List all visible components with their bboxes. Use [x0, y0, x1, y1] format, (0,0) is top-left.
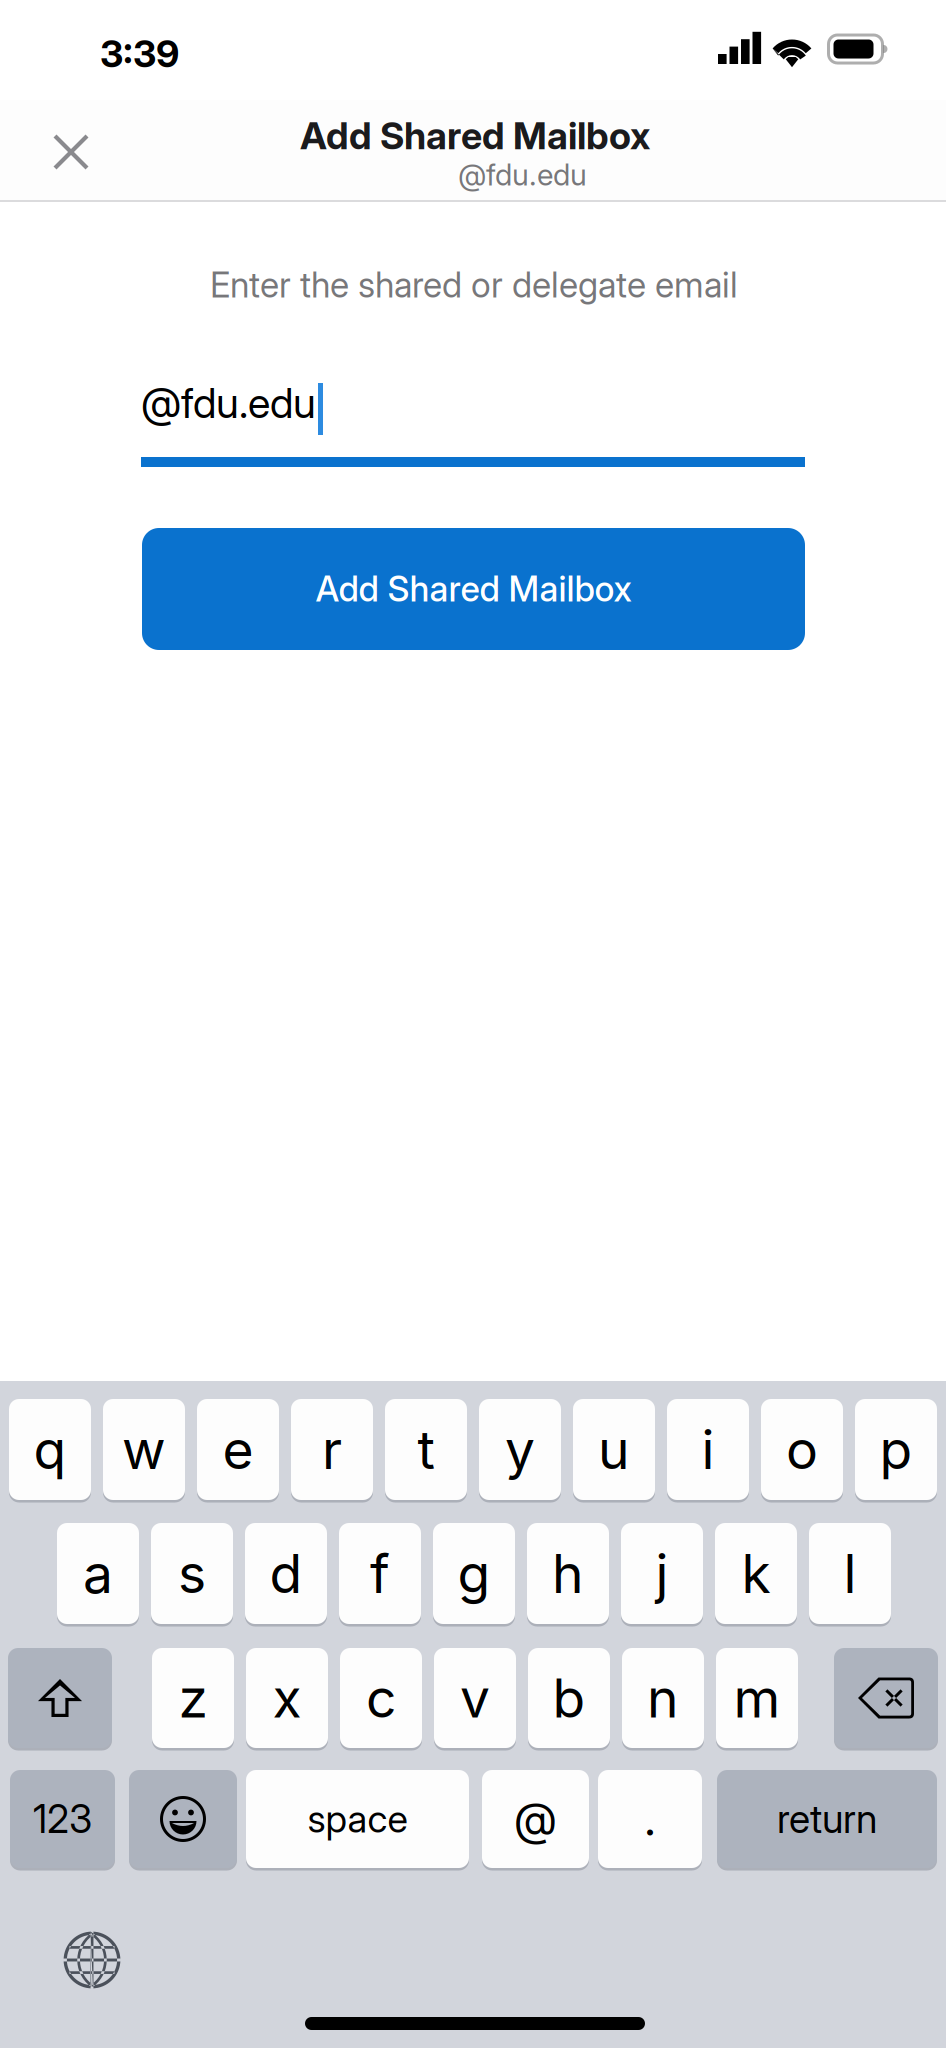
- button[interactable]: i: [667, 1399, 749, 1503]
- staticText: d: [269, 1541, 302, 1606]
- button[interactable]: 123: [10, 1770, 115, 1871]
- button[interactable]: r: [291, 1399, 373, 1503]
- staticText: t: [417, 1417, 434, 1482]
- staticText: Add Shared Mailbox: [300, 113, 650, 158]
- button[interactable]: a: [57, 1523, 139, 1627]
- button[interactable]: y: [479, 1399, 561, 1503]
- staticText: space: [307, 1796, 407, 1842]
- staticText: a: [83, 1541, 113, 1606]
- button[interactable]: p: [855, 1399, 937, 1503]
- button[interactable]: w: [103, 1399, 185, 1503]
- button[interactable]: v: [434, 1648, 516, 1751]
- staticText: v: [460, 1666, 490, 1730]
- staticText: r: [322, 1417, 342, 1482]
- staticText: @: [513, 1792, 557, 1846]
- button[interactable]: g: [433, 1523, 515, 1627]
- button[interactable]: f: [339, 1523, 421, 1627]
- staticText: .: [643, 1792, 656, 1846]
- staticText: u: [598, 1417, 630, 1482]
- button[interactable]: .: [598, 1770, 702, 1871]
- button[interactable]: q: [9, 1399, 91, 1503]
- staticText: q: [33, 1417, 66, 1482]
- button[interactable]: u: [573, 1399, 655, 1503]
- staticText: o: [786, 1417, 818, 1482]
- staticText: c: [366, 1666, 396, 1730]
- button[interactable]: Add Shared Mailbox: [142, 528, 805, 650]
- button[interactable]: @: [482, 1770, 589, 1871]
- button[interactable]: Next keyboard: [46, 1914, 138, 2006]
- button[interactable]: l: [809, 1523, 891, 1627]
- button[interactable]: e: [197, 1399, 279, 1503]
- button[interactable]: space: [246, 1770, 469, 1871]
- button[interactable]: k: [715, 1523, 797, 1627]
- staticText: h: [552, 1541, 584, 1606]
- staticText: j: [655, 1541, 668, 1606]
- button[interactable]: Shift: [8, 1648, 112, 1751]
- staticText: f: [370, 1541, 390, 1606]
- staticText: @fdu.edu: [458, 157, 587, 192]
- button[interactable]: c: [340, 1648, 422, 1751]
- button[interactable]: z: [152, 1648, 234, 1751]
- staticText: Enter the shared or delegate email: [210, 264, 738, 306]
- staticText: 123: [33, 1796, 92, 1842]
- button[interactable]: j: [621, 1523, 703, 1627]
- staticText: y: [505, 1417, 535, 1482]
- staticText: b: [552, 1666, 585, 1730]
- staticText: w: [122, 1417, 166, 1482]
- button[interactable]: Close: [25, 106, 117, 198]
- button[interactable]: Emoji: [129, 1770, 237, 1871]
- staticText: s: [178, 1541, 206, 1606]
- button[interactable]: Delete: [834, 1648, 938, 1751]
- staticText: return: [777, 1796, 877, 1842]
- staticText: e: [222, 1417, 253, 1482]
- button[interactable]: b: [528, 1648, 610, 1751]
- button[interactable]: h: [527, 1523, 609, 1627]
- staticText: p: [879, 1417, 912, 1482]
- button[interactable]: d: [245, 1523, 327, 1627]
- staticText: k: [741, 1541, 770, 1606]
- staticText: i: [701, 1417, 714, 1482]
- staticText: Add Shared Mailbox: [315, 568, 631, 610]
- button[interactable]: s: [151, 1523, 233, 1627]
- button[interactable]: t: [385, 1399, 467, 1503]
- staticText: z: [178, 1666, 207, 1730]
- staticText: @fdu.edu: [141, 378, 316, 428]
- button[interactable]: m: [716, 1648, 798, 1751]
- button[interactable]: return: [717, 1770, 937, 1871]
- staticText: x: [272, 1666, 301, 1730]
- staticText: 3:39: [100, 31, 179, 76]
- staticText: n: [647, 1666, 679, 1730]
- staticText: l: [843, 1541, 856, 1606]
- button[interactable]: n: [622, 1648, 704, 1751]
- button[interactable]: o: [761, 1399, 843, 1503]
- button[interactable]: x: [246, 1648, 328, 1751]
- staticText: m: [733, 1666, 780, 1730]
- staticText: g: [457, 1541, 490, 1606]
